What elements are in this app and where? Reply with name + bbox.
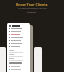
staticText: All client information is at your (18, 7, 47, 10)
button[interactable] (9, 39, 30, 42)
button[interactable] (9, 68, 30, 71)
button[interactable] (9, 65, 30, 68)
staticText: fingertips (27, 11, 37, 14)
button[interactable] (9, 27, 30, 30)
button[interactable] (34, 47, 42, 72)
button[interactable] (9, 36, 30, 39)
button[interactable] (9, 30, 30, 33)
button[interactable] (9, 42, 30, 45)
button[interactable] (9, 33, 30, 36)
button[interactable] (0, 47, 6, 72)
button[interactable] (9, 24, 20, 27)
button[interactable] (9, 45, 30, 48)
staticText: Know Your Clients (16, 2, 48, 7)
button[interactable] (9, 62, 22, 64)
